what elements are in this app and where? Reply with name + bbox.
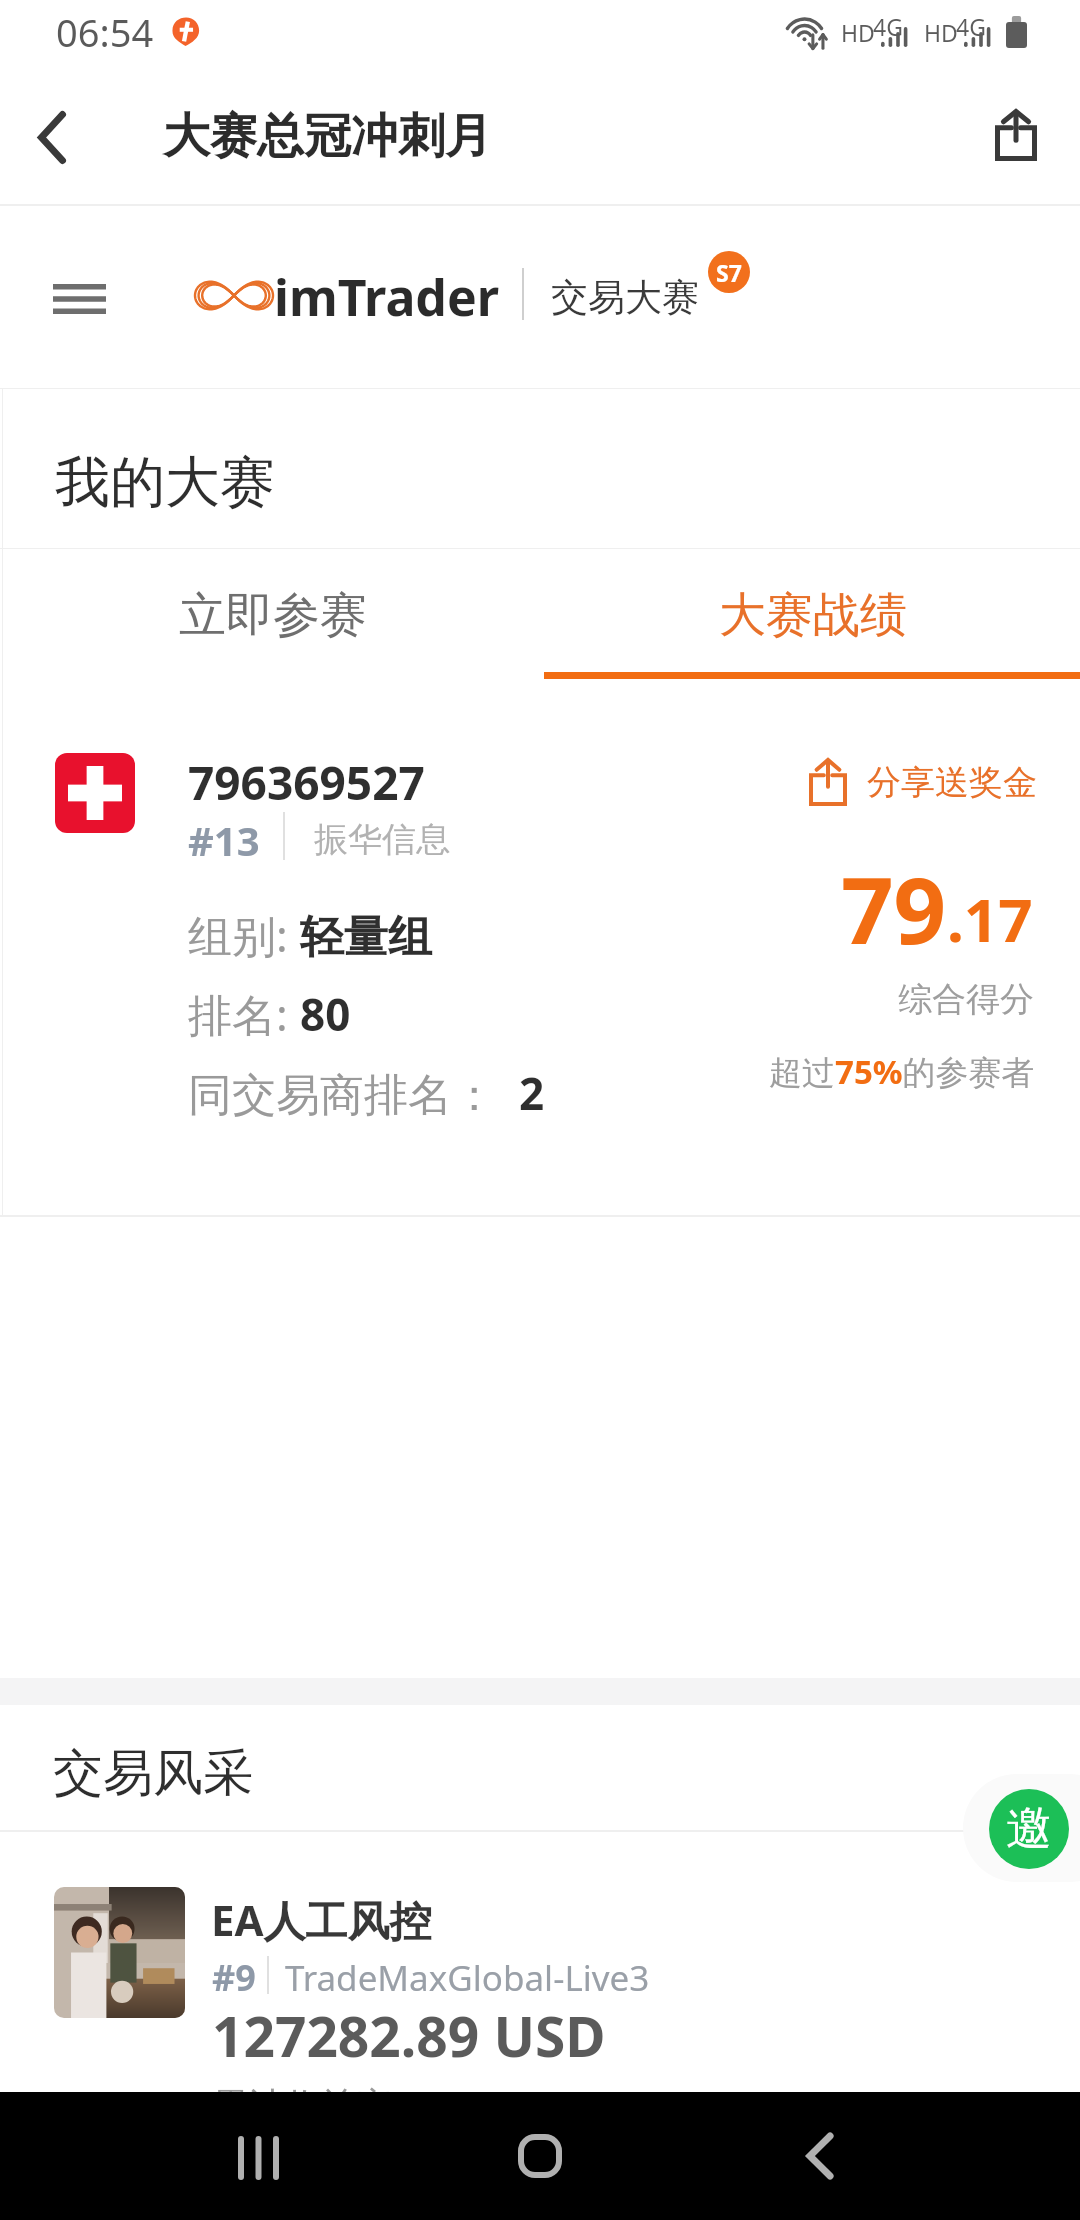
staticText: 大赛总冠冲刺月 [163,107,492,166]
staticText: 邀 [1006,1800,1052,1858]
staticText: 交易风采 [53,1742,253,1805]
staticText: S7 [716,257,742,288]
staticText: 06:54 [56,6,154,58]
staticText: 2 [519,1063,545,1123]
staticText: 振华信息 [314,818,450,861]
staticText: TradeMaxGlobal-Live3 [285,1954,650,2002]
button[interactable]: 大赛战绩 [543,550,1080,680]
button[interactable]: 立即参赛 [3,550,543,680]
staticText: 组别: [188,905,300,965]
staticText: 79 [841,846,947,971]
staticText: #9 [212,1953,256,2002]
button[interactable]: Back [6,92,98,182]
staticText: HD [841,17,875,48]
staticText: 综合得分 [898,978,1034,1021]
button[interactable] [3,680,1080,1215]
staticText: #13 [188,813,260,867]
button[interactable]: S7 [708,251,750,293]
staticText: 4G [956,11,986,42]
staticText: 796369527 [188,751,425,814]
button[interactable]: Menu [39,259,119,339]
button[interactable]: Recents [208,2112,308,2204]
staticText: 分享送奖金 [867,761,1037,804]
staticText: HD [924,17,958,48]
staticText: EA人工风控 [211,1891,432,1948]
staticText: 我的大赛 [55,448,275,517]
staticText: 超过75%的参赛者 [769,1049,1035,1094]
staticText: 80 [300,984,351,1044]
staticText: imTrader [274,263,500,331]
staticText: 排名: [188,984,300,1044]
staticText: 轻量组 [300,910,432,965]
staticText: 127282.89 USD [212,1998,606,2073]
staticText: 累计收益率 [212,2083,392,2128]
staticText: 同交易商排名： [188,1063,519,1123]
button[interactable] [0,1832,1080,2092]
button[interactable]: Share [970,90,1062,180]
button[interactable]: Back [770,2110,870,2202]
button[interactable]: 分享送奖金 [800,747,1062,817]
staticText: 4G [873,11,903,42]
button[interactable]: Home [490,2110,590,2202]
staticText: 交易大赛 [551,274,699,321]
staticText: .17 [947,878,1033,960]
button[interactable]: Invite [989,1789,1069,1869]
staticText: 大赛战绩 [719,586,907,645]
staticText: 立即参赛 [179,586,367,645]
